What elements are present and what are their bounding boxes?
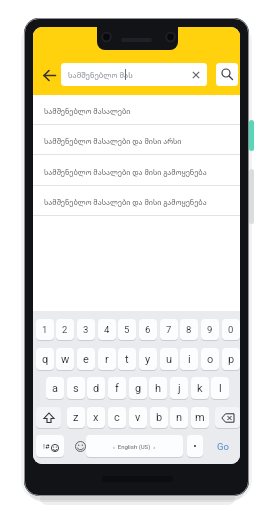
staticText: 6 xyxy=(145,324,151,335)
button[interactable]: 7 xyxy=(160,319,178,340)
button[interactable]: d xyxy=(87,377,105,399)
staticText: ‹ English (US) › xyxy=(113,443,156,450)
staticText: 8 xyxy=(186,324,192,335)
staticText: 7 xyxy=(166,324,172,335)
button[interactable]: u xyxy=(160,348,178,370)
button[interactable]: v xyxy=(129,407,147,428)
button[interactable]: f xyxy=(108,377,126,399)
button[interactable]: j xyxy=(170,377,188,399)
staticText: b xyxy=(156,411,163,424)
staticText: v xyxy=(135,411,141,424)
button[interactable]: t xyxy=(118,348,136,370)
staticText: სამშენებლო მასალები xyxy=(44,106,131,116)
button[interactable]: 2 xyxy=(56,319,74,340)
staticText: r xyxy=(105,353,109,366)
staticText: 1 xyxy=(42,324,48,335)
button[interactable]: g xyxy=(129,377,147,399)
button[interactable]: w xyxy=(56,348,74,370)
button[interactable]: სამშენებლო მასალები და მისი გამოყენება xyxy=(33,156,240,186)
staticText: g xyxy=(135,382,142,395)
button[interactable]: a xyxy=(46,377,64,399)
button[interactable]: !# xyxy=(36,435,64,457)
staticText: l xyxy=(219,382,222,395)
staticText: z xyxy=(73,411,79,424)
button[interactable]: y xyxy=(139,348,157,370)
button[interactable]: o xyxy=(201,348,219,370)
staticText: 2 xyxy=(62,324,68,335)
button[interactable]: 9 xyxy=(201,319,219,340)
button[interactable]: 8 xyxy=(180,319,198,340)
staticText: o xyxy=(207,353,214,366)
button[interactable]: 0 xyxy=(222,319,240,340)
button[interactable]: r xyxy=(98,348,116,370)
staticText: !# xyxy=(43,442,50,451)
staticText: სამშენებლო მასალები და მისი გამოყენება xyxy=(44,197,207,207)
button[interactable]: 6 xyxy=(139,319,157,340)
button[interactable]: 1 xyxy=(36,319,54,340)
staticText: x xyxy=(93,411,99,424)
button[interactable] xyxy=(216,63,238,86)
staticText: s xyxy=(73,382,79,395)
staticText: 5 xyxy=(124,324,130,335)
staticText: n xyxy=(176,411,183,424)
button[interactable] xyxy=(41,67,59,84)
button[interactable]: 4 xyxy=(98,319,116,340)
button[interactable]: c xyxy=(108,407,126,428)
staticText: t xyxy=(125,353,129,366)
staticText: u xyxy=(166,353,173,366)
staticText: j xyxy=(178,382,181,395)
button[interactable]: e xyxy=(77,348,95,370)
staticText: q xyxy=(42,353,49,366)
staticText: სამშენებლო მას xyxy=(68,70,133,80)
button[interactable]: q xyxy=(36,348,54,370)
button[interactable]: z xyxy=(67,407,85,428)
staticText: h xyxy=(155,382,162,395)
staticText: 3 xyxy=(83,324,89,335)
button[interactable]: 3 xyxy=(77,319,95,340)
button[interactable]: n xyxy=(170,407,188,428)
staticText: e xyxy=(83,353,89,366)
staticText: 4 xyxy=(104,324,110,335)
button[interactable] xyxy=(68,435,93,457)
button[interactable]: b xyxy=(150,407,168,428)
staticText: Go xyxy=(217,441,229,452)
button[interactable]: 5 xyxy=(118,319,136,340)
button[interactable]: ‹ English (US) › xyxy=(86,435,183,457)
button[interactable] xyxy=(36,407,61,428)
staticText: y xyxy=(145,353,151,366)
staticText: i xyxy=(188,353,191,366)
staticText: d xyxy=(93,382,100,395)
staticText: a xyxy=(52,382,58,395)
button[interactable]: სამშენებლო მას xyxy=(61,63,207,86)
staticText: c xyxy=(114,411,120,424)
button[interactable]: l xyxy=(211,377,229,399)
staticText: 9 xyxy=(207,324,213,335)
button[interactable] xyxy=(187,435,203,457)
staticText: w xyxy=(61,353,70,366)
staticText: m xyxy=(195,411,205,424)
button[interactable]: p xyxy=(222,348,240,370)
button[interactable]: s xyxy=(67,377,85,399)
staticText: p xyxy=(228,353,235,366)
button[interactable] xyxy=(215,407,240,428)
button[interactable]: k xyxy=(191,377,209,399)
button[interactable]: m xyxy=(191,407,209,428)
button[interactable]: სამშენებლო მასალები xyxy=(33,95,240,125)
staticText: 0 xyxy=(228,324,234,335)
staticText: სამშენებლო მასალები და მისი გამოყენება xyxy=(44,167,207,177)
button[interactable]: h xyxy=(149,377,167,399)
button[interactable]: Go xyxy=(211,435,235,457)
staticText: სამშენებლო მასალები და მისი არსი xyxy=(44,136,182,146)
staticText: k xyxy=(197,382,203,395)
button[interactable]: i xyxy=(180,348,198,370)
staticText: f xyxy=(115,382,119,395)
button[interactable]: x xyxy=(87,407,105,428)
button[interactable]: სამშენებლო მასალები და მისი გამოყენება xyxy=(33,186,240,216)
button[interactable]: სამშენებლო მასალები და მისი არსი xyxy=(33,125,240,155)
